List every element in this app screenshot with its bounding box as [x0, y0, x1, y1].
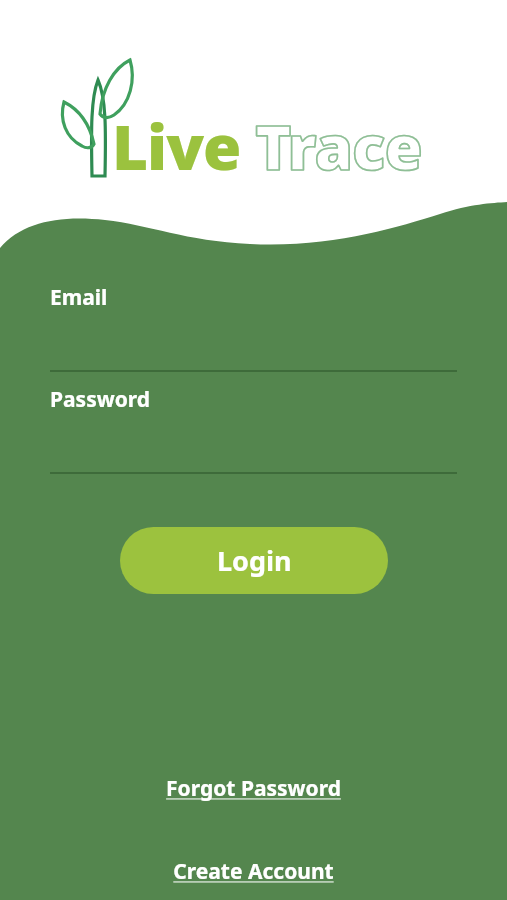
staticText: Forgot Password — [166, 774, 341, 803]
button[interactable]: Forgot Password — [154, 768, 353, 809]
staticText: Login — [217, 542, 292, 579]
staticText: Create Account — [173, 857, 334, 886]
staticText: Trace — [255, 104, 422, 188]
button[interactable]: Create Account — [161, 851, 346, 892]
button[interactable]: Login — [120, 527, 388, 594]
staticText: Email — [50, 283, 108, 312]
staticText: Live — [112, 104, 241, 188]
staticText: Password — [50, 385, 151, 414]
